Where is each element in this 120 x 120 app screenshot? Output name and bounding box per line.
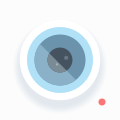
button[interactable]: Capture bbox=[17, 17, 103, 103]
